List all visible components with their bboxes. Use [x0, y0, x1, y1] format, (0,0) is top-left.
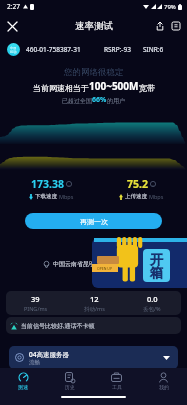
staticText: 75.2 [127, 177, 148, 191]
staticText: 流畅 [29, 359, 40, 366]
staticText: 我的 [159, 384, 169, 390]
button[interactable]: Close [2, 16, 22, 36]
staticText: 丢包/% [143, 305, 161, 313]
staticText: PING/ms [24, 305, 48, 312]
staticText: 开 箱 [150, 251, 163, 281]
staticText: Mbps [149, 193, 164, 200]
staticText: 中国 移动 [10, 46, 17, 54]
staticText: 100~500M [89, 79, 139, 93]
staticText: 宽带 [139, 83, 155, 93]
button[interactable]: 再测一次 [25, 213, 162, 229]
staticText: 上传速度 [125, 193, 147, 200]
button[interactable]: 我的 [140, 368, 187, 394]
button[interactable]: 工具 [93, 368, 140, 394]
staticText: 中国云南省昆明 [53, 260, 95, 268]
button[interactable]: 测速 [0, 368, 46, 394]
button[interactable]: Share [152, 18, 168, 34]
staticText: 当前信号比较好,通话不卡顿 [21, 322, 95, 330]
staticText: SINR:6 [143, 45, 164, 54]
staticText: 速率测试 [75, 20, 113, 32]
staticText: 的用户 [107, 97, 125, 105]
button[interactable]: Report [168, 18, 184, 34]
button[interactable]: 04高速服务器 [9, 346, 178, 369]
staticText: 测速 [18, 384, 28, 390]
staticText: 当前网速相当于 [33, 83, 89, 93]
staticText: 您的网络很稳定 [64, 67, 124, 78]
button[interactable]: 当前信号比较好,通话不卡顿 [6, 317, 181, 334]
button[interactable] [92, 238, 187, 288]
staticText: 173.38 [31, 177, 64, 191]
staticText: 39 [31, 294, 40, 304]
staticText: OPEN UP [97, 266, 113, 271]
staticText: 0.0 [147, 294, 158, 304]
staticText: 2:27 [7, 2, 20, 11]
staticText: 工具 [112, 384, 122, 390]
staticText: 460-01-758387-31 [26, 45, 81, 54]
staticText: 04高速服务器 [29, 350, 69, 359]
staticText: Mbps [59, 193, 74, 200]
staticText: 历史 [65, 384, 75, 390]
staticText: 下载速度 [35, 193, 57, 200]
button[interactable]: 历史 [46, 368, 93, 394]
staticText: 已超过全国 [62, 97, 92, 105]
staticText: 79% [164, 3, 176, 11]
staticText: 12 [90, 294, 99, 304]
staticText: 再测一次 [80, 217, 108, 226]
staticText: 66% [92, 95, 107, 105]
staticText: RSRP:-93 [104, 45, 131, 54]
staticText: 抖动/ms [84, 305, 105, 313]
